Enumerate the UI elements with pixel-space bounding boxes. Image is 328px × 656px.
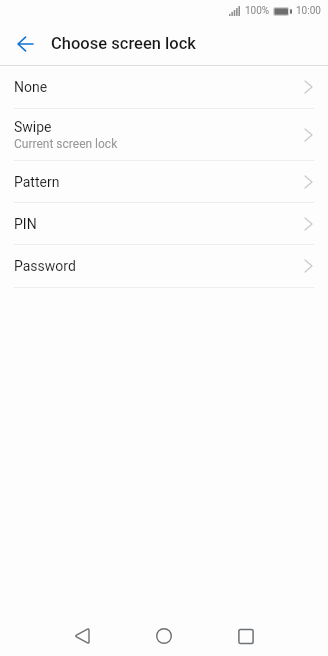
staticText: 100% xyxy=(245,5,270,17)
staticText: Password xyxy=(14,258,76,274)
staticText: None xyxy=(14,79,48,95)
button[interactable]: Back xyxy=(4,22,47,65)
staticText: PIN xyxy=(14,216,37,232)
staticText: Choose screen lock xyxy=(51,34,196,53)
staticText: Swipe xyxy=(14,119,52,135)
button[interactable]: Back xyxy=(41,616,123,656)
button[interactable]: Home xyxy=(123,616,205,656)
button[interactable]: Pattern xyxy=(0,161,328,202)
button[interactable]: None xyxy=(0,66,328,108)
staticText: Current screen lock xyxy=(14,137,118,151)
staticText: 10:00 xyxy=(296,5,321,17)
staticText: Pattern xyxy=(14,174,60,190)
button[interactable]: Password xyxy=(0,245,328,287)
button[interactable]: Recents xyxy=(205,616,287,656)
button[interactable]: PIN xyxy=(0,203,328,244)
button[interactable]: Swipe xyxy=(0,109,328,160)
